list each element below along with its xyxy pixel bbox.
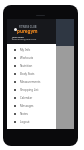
staticText: Nutrition xyxy=(20,64,33,68)
staticText: Body Stats xyxy=(20,72,35,76)
button[interactable]: Logout xyxy=(7,118,56,126)
button[interactable]: Workouts xyxy=(7,54,56,62)
staticText: Calendar xyxy=(20,96,33,100)
button[interactable]: Calendar xyxy=(7,94,56,102)
staticText: My Info xyxy=(20,48,31,52)
staticText: Logout xyxy=(20,120,30,124)
button[interactable]: My Info xyxy=(7,46,56,54)
button[interactable]: Notes xyxy=(7,110,56,118)
button[interactable]: Shopping List xyxy=(7,86,56,94)
staticText: puregym xyxy=(17,28,38,34)
staticText: Jane Smith xyxy=(12,35,24,38)
staticText: Workouts xyxy=(20,56,34,60)
staticText: Shopping List xyxy=(20,88,39,92)
button[interactable]: Messages xyxy=(7,102,56,110)
button[interactable]: Measurements xyxy=(7,78,56,86)
staticText: jane.smith@mail.com xyxy=(12,37,37,40)
staticText: Messages xyxy=(20,104,34,108)
button[interactable]: Body Stats xyxy=(7,70,56,78)
button[interactable]: Nutrition xyxy=(7,62,56,70)
staticText: Notes xyxy=(20,112,29,116)
staticText: Measurements xyxy=(20,80,41,84)
staticText: FITNESS CLUB xyxy=(19,25,37,29)
